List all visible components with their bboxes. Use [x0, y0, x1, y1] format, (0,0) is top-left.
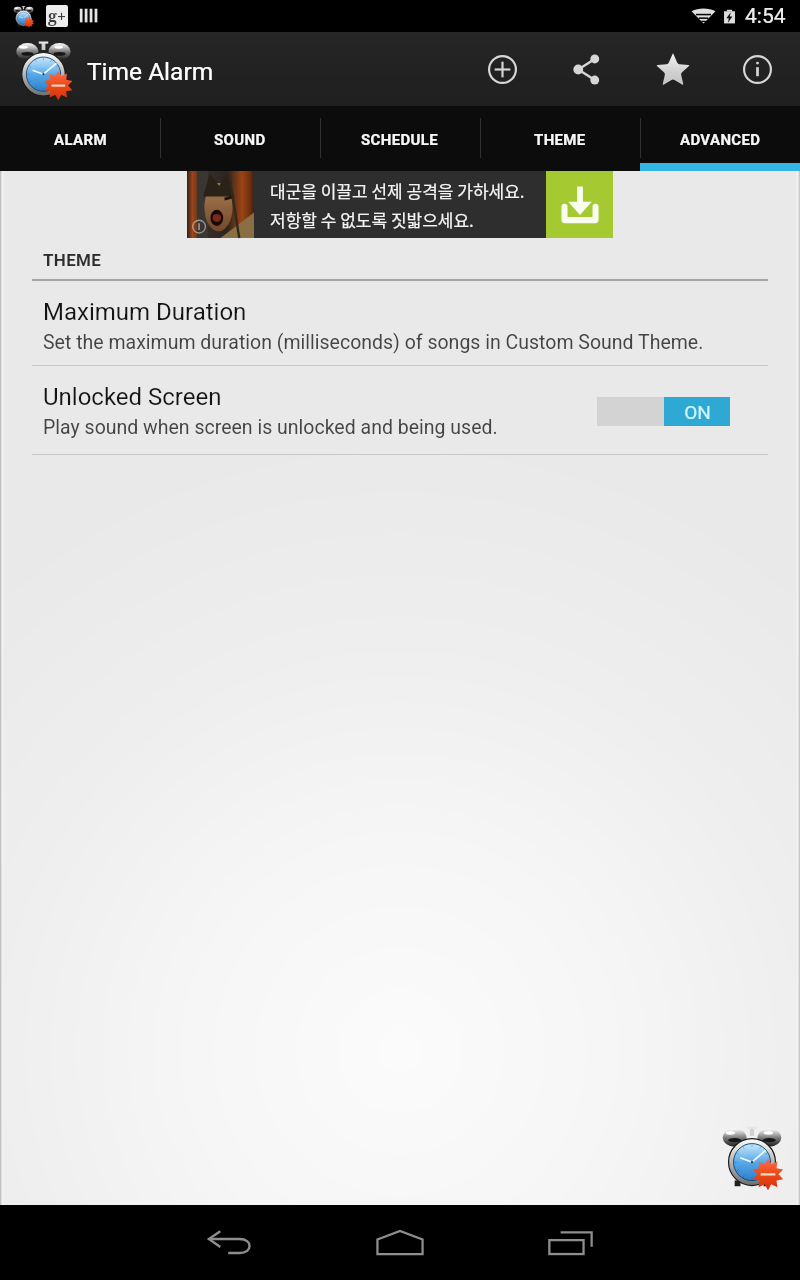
staticText: Set the maximum duration (milliseconds) … — [43, 331, 704, 354]
staticText: Play sound when screen is unlocked and b… — [43, 416, 498, 439]
button[interactable]: THEME — [480, 106, 640, 171]
staticText: ON — [684, 401, 711, 423]
button[interactable]: Maximum Duration — [0, 281, 800, 366]
staticText: 4:54 — [745, 4, 786, 29]
staticText: THEME — [534, 131, 586, 149]
staticText: ADVANCED — [680, 131, 761, 149]
button[interactable]: Unlocked Screen toggle, ON — [597, 397, 730, 426]
button[interactable]: Back — [145, 1205, 315, 1280]
staticText: Time Alarm — [87, 57, 214, 86]
button[interactable]: ADVANCED — [640, 106, 800, 171]
button[interactable]: Download — [546, 171, 613, 238]
staticText: ALARM — [54, 131, 107, 149]
button[interactable]: Favorite — [630, 32, 715, 106]
staticText: g+ — [48, 5, 67, 27]
staticText: THEME — [43, 250, 102, 270]
button[interactable]: ALARM — [0, 106, 160, 171]
staticText: 대군을 이끌고 선제 공격을 가하세요. — [270, 178, 525, 203]
button[interactable]: Recents — [485, 1205, 655, 1280]
staticText: SCHEDULE — [361, 131, 439, 149]
button[interactable]: Add — [460, 32, 545, 106]
button[interactable]: Share — [545, 32, 630, 106]
staticText: Unlocked Screen — [43, 383, 222, 411]
staticText: SOUND — [214, 131, 266, 149]
button[interactable]: Home — [315, 1205, 485, 1280]
staticText: 저항할 수 없도록 짓밟으세요. — [270, 207, 474, 232]
staticText: Maximum Duration — [43, 298, 247, 326]
button[interactable]: SCHEDULE — [320, 106, 480, 171]
button[interactable]: Info — [715, 32, 800, 106]
button[interactable]: SOUND — [160, 106, 320, 171]
button[interactable]: Unlocked Screen — [0, 366, 800, 455]
